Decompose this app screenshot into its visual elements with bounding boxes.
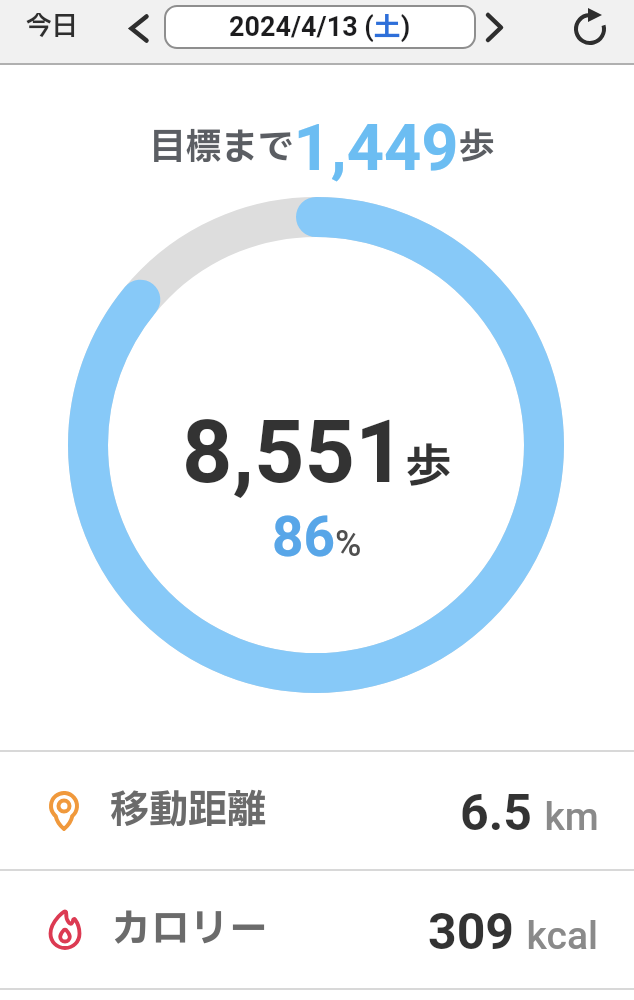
button[interactable]: カロリー: [0, 871, 634, 988]
button[interactable]: 移動距離: [0, 752, 634, 869]
button[interactable]: [482, 12, 512, 42]
staticText: 86%: [272, 505, 362, 569]
staticText: 309 kcal: [428, 903, 599, 962]
staticText: 目標まで1,449歩: [149, 110, 495, 186]
staticText: 8,551歩: [182, 400, 452, 503]
staticText: 移動距離: [110, 782, 267, 840]
staticText: カロリー: [112, 901, 269, 959]
staticText: 6.5 km: [460, 784, 599, 843]
staticText: 2024/4/13 (土): [229, 7, 411, 47]
staticText: 今日: [26, 7, 79, 46]
button[interactable]: [124, 12, 154, 42]
button[interactable]: [572, 10, 610, 48]
button[interactable]: 2024/4/13 (土): [164, 5, 476, 49]
button[interactable]: 今日: [26, 7, 79, 46]
